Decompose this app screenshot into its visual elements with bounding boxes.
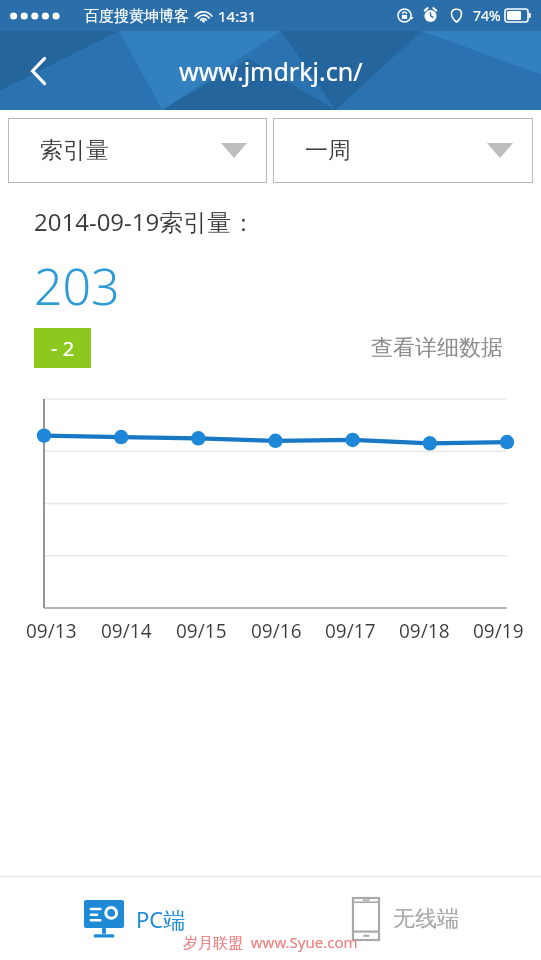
staticText: 09/13 xyxy=(26,618,77,644)
staticText: 74% xyxy=(473,6,501,25)
staticText: 09/16 xyxy=(251,618,302,644)
button[interactable]: Back xyxy=(14,46,64,96)
staticText: 09/14 xyxy=(101,618,152,644)
button[interactable]: PC端 xyxy=(0,877,270,960)
staticText: 岁月联盟 www.Syue.com xyxy=(183,932,358,952)
button[interactable]: 查看详细数据 xyxy=(367,330,507,366)
staticText: 无线端 xyxy=(393,905,459,933)
staticText: 百度搜黄坤博客 xyxy=(84,7,189,26)
button[interactable]: 索引量 xyxy=(8,118,267,183)
staticText: 14:31 xyxy=(218,6,257,26)
staticText: PC端 xyxy=(136,904,186,934)
staticText: 2014-09-19索引量： xyxy=(34,205,256,238)
staticText: 09/17 xyxy=(325,618,376,644)
staticText: www.jmdrkj.cn/ xyxy=(179,54,363,88)
staticText: 09/15 xyxy=(176,618,227,644)
button[interactable]: 一周 xyxy=(273,118,533,183)
staticText: 查看详细数据 xyxy=(371,334,503,362)
staticText: 一周 xyxy=(305,136,351,165)
staticText: 索引量 xyxy=(40,136,109,165)
staticText: 09/18 xyxy=(399,618,450,644)
staticText: 09/19 xyxy=(473,618,524,644)
button[interactable]: - 2 xyxy=(34,328,91,368)
button[interactable]: 无线端 xyxy=(270,877,541,960)
staticText: 203 xyxy=(34,252,120,320)
staticText: - 2 xyxy=(51,335,75,362)
